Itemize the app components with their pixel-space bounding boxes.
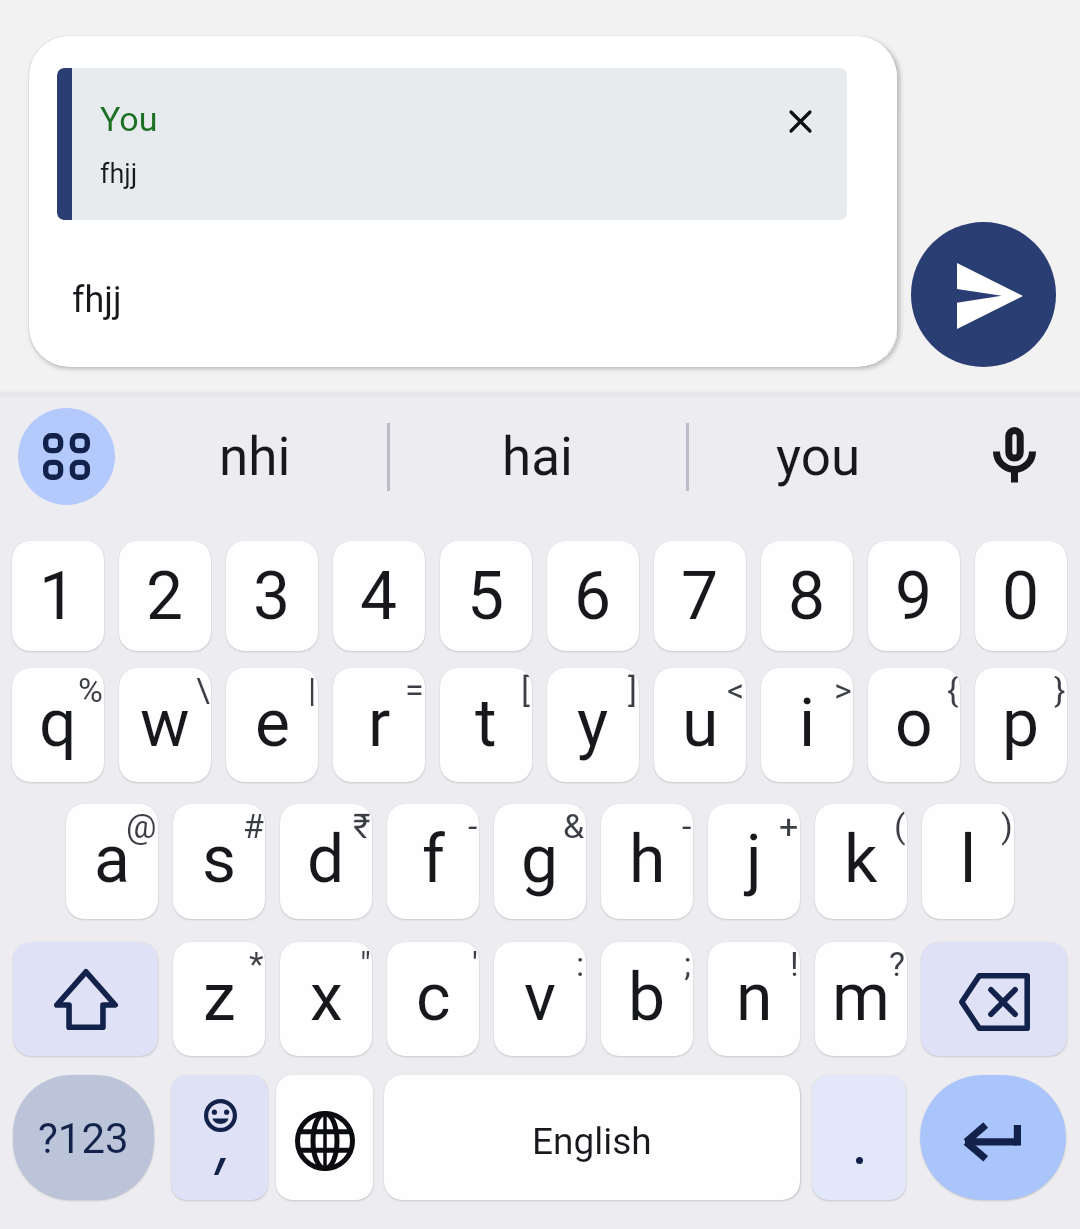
- button[interactable]: Backspace: [921, 942, 1067, 1056]
- button[interactable]: Shift: [13, 942, 158, 1056]
- staticText: u: [682, 685, 719, 762]
- staticText: a: [94, 821, 130, 898]
- staticText: j: [746, 821, 762, 898]
- staticText: ): [1001, 806, 1013, 846]
- button[interactable]: m: [815, 942, 907, 1056]
- staticText: d: [307, 821, 345, 898]
- button[interactable]: l: [922, 804, 1014, 919]
- staticText: 5: [467, 558, 505, 635]
- staticText: m: [832, 959, 890, 1036]
- button[interactable]: d: [280, 804, 372, 919]
- button[interactable]: 4: [333, 541, 425, 651]
- button[interactable]: f: [387, 804, 479, 919]
- staticText: t: [475, 685, 497, 762]
- button[interactable]: 7: [654, 541, 746, 651]
- staticText: -: [682, 806, 692, 846]
- staticText: b: [628, 959, 666, 1036]
- button[interactable]: b: [601, 942, 693, 1056]
- button[interactable]: 0: [975, 541, 1067, 651]
- button[interactable]: g: [494, 804, 586, 919]
- button[interactable]: r: [333, 668, 425, 782]
- button[interactable]: nhi: [170, 409, 340, 504]
- staticText: h: [629, 821, 666, 898]
- button[interactable]: w: [119, 668, 211, 782]
- button[interactable]: s: [173, 804, 265, 919]
- staticText: o: [895, 685, 933, 762]
- button[interactable]: 8: [761, 541, 853, 651]
- staticText: (: [894, 806, 906, 846]
- button[interactable]: ?123: [13, 1075, 154, 1200]
- button[interactable]: x: [280, 942, 372, 1056]
- staticText: ]: [628, 670, 638, 710]
- staticText: [: [521, 670, 531, 710]
- button[interactable]: Change keyboard language: [276, 1075, 373, 1200]
- staticText: x: [310, 959, 343, 1036]
- staticText: <: [727, 670, 745, 710]
- button[interactable]: Voice input: [968, 410, 1060, 502]
- staticText: l: [960, 821, 977, 898]
- button[interactable]: t: [440, 668, 532, 782]
- button[interactable]: i: [761, 668, 853, 782]
- button[interactable]: k: [815, 804, 907, 919]
- staticText: 8: [788, 558, 826, 635]
- staticText: ": [360, 944, 371, 984]
- staticText: You: [100, 99, 158, 139]
- staticText: \: [196, 670, 210, 710]
- staticText: f: [422, 821, 445, 898]
- button[interactable]: 2: [119, 541, 211, 651]
- staticText: |: [308, 670, 317, 710]
- staticText: 7: [681, 558, 719, 635]
- button[interactable]: u: [654, 668, 746, 782]
- staticText: you: [776, 426, 861, 488]
- button[interactable]: you: [733, 409, 903, 504]
- button[interactable]: Period: [812, 1075, 906, 1200]
- button[interactable]: h: [601, 804, 693, 919]
- staticText: e: [255, 685, 290, 762]
- button[interactable]: 1: [12, 541, 104, 651]
- button[interactable]: n: [708, 942, 800, 1056]
- button[interactable]: q: [12, 668, 104, 782]
- button[interactable]: 5: [440, 541, 532, 651]
- button[interactable]: Enter: [920, 1075, 1066, 1200]
- button[interactable]: Send: [911, 222, 1056, 367]
- button[interactable]: hai: [452, 409, 622, 504]
- staticText: ': [472, 944, 478, 984]
- staticText: p: [1002, 685, 1040, 762]
- button[interactable]: c: [387, 942, 479, 1056]
- staticText: 1: [39, 558, 77, 635]
- staticText: i: [799, 685, 816, 762]
- button[interactable]: v: [494, 942, 586, 1056]
- staticText: 9: [895, 558, 933, 635]
- staticText: 0: [1002, 558, 1040, 635]
- button[interactable]: 9: [868, 541, 960, 651]
- button[interactable]: 3: [226, 541, 318, 651]
- staticText: n: [736, 959, 773, 1036]
- staticText: k: [844, 821, 878, 898]
- staticText: g: [521, 821, 559, 898]
- button[interactable]: Close reply: [770, 91, 831, 152]
- staticText: fhjj: [100, 158, 138, 190]
- button[interactable]: p: [975, 668, 1067, 782]
- staticText: ?: [889, 944, 906, 984]
- button[interactable]: z: [173, 942, 265, 1056]
- staticText: #: [243, 806, 264, 846]
- button[interactable]: y: [547, 668, 639, 782]
- staticText: English: [532, 1120, 652, 1163]
- button[interactable]: j: [708, 804, 800, 919]
- staticText: 6: [574, 558, 612, 635]
- staticText: ₹: [353, 806, 371, 846]
- button[interactable]: Open toolbar: [18, 408, 115, 505]
- staticText: z: [203, 959, 236, 1036]
- button[interactable]: o: [868, 668, 960, 782]
- staticText: !: [790, 944, 799, 984]
- button[interactable]: You: [29, 36, 897, 367]
- button[interactable]: English: [384, 1075, 800, 1200]
- staticText: %: [78, 670, 103, 710]
- button[interactable]: 6: [547, 541, 639, 651]
- button[interactable]: a: [66, 804, 158, 919]
- staticText: s: [202, 821, 237, 898]
- button[interactable]: Emoji: [171, 1075, 268, 1200]
- button[interactable]: e: [226, 668, 318, 782]
- staticText: q: [39, 685, 77, 762]
- staticText: c: [416, 959, 451, 1036]
